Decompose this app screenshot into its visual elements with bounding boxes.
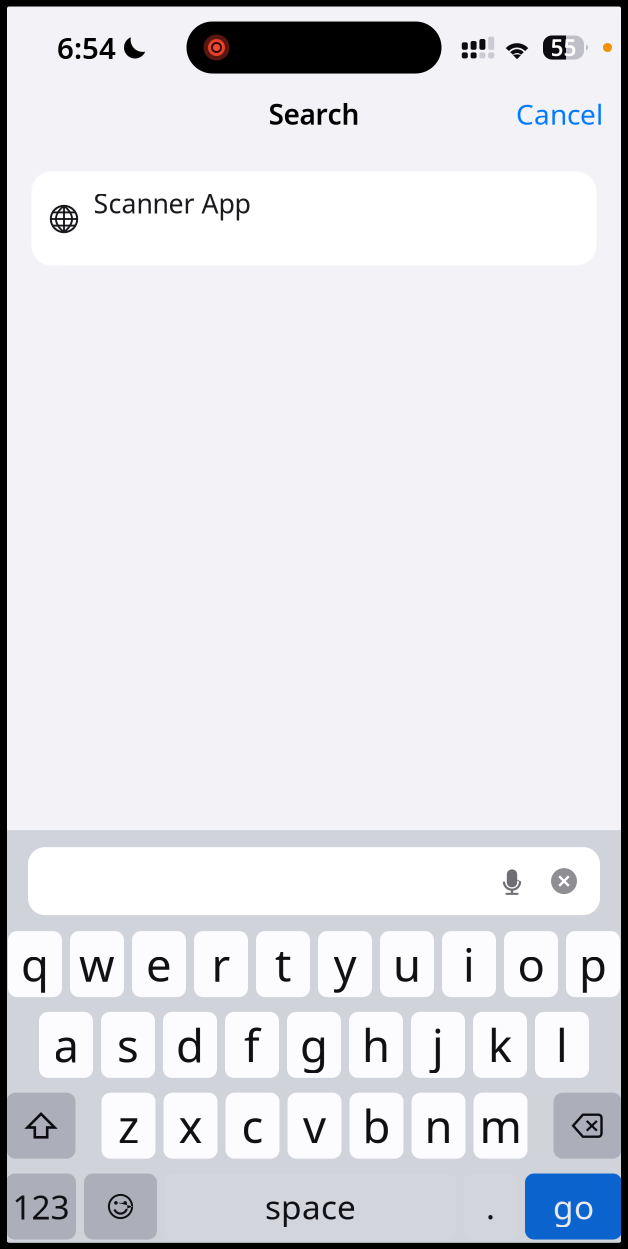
button[interactable]: 123 bbox=[6, 1173, 76, 1239]
button[interactable]: Cancel bbox=[516, 95, 621, 133]
button[interactable]: q bbox=[8, 931, 62, 997]
staticText: Cancel bbox=[516, 95, 603, 133]
button[interactable]: space bbox=[165, 1173, 456, 1239]
staticText: i bbox=[463, 934, 475, 994]
button[interactable]: z bbox=[101, 1093, 155, 1159]
button[interactable]: Scanner App bbox=[31, 171, 596, 265]
staticText: 123 bbox=[12, 1184, 69, 1229]
staticText: r bbox=[211, 934, 230, 994]
button[interactable]: s bbox=[101, 1012, 155, 1078]
button[interactable]: Emoji bbox=[84, 1173, 157, 1239]
button[interactable]: . bbox=[464, 1173, 517, 1239]
button[interactable]: j bbox=[411, 1012, 465, 1078]
staticText: n bbox=[424, 1096, 452, 1156]
staticText: t bbox=[275, 934, 291, 994]
staticText: h bbox=[362, 1015, 390, 1075]
staticText: z bbox=[118, 1096, 139, 1156]
staticText: go bbox=[553, 1184, 594, 1229]
staticText: 6:54 bbox=[57, 28, 116, 67]
staticText: l bbox=[556, 1015, 568, 1075]
button[interactable]: a bbox=[39, 1012, 93, 1078]
button[interactable]: go bbox=[525, 1173, 622, 1239]
staticText: g bbox=[300, 1015, 328, 1075]
button[interactable]: b bbox=[349, 1093, 403, 1159]
button[interactable]: Shift bbox=[6, 1093, 75, 1159]
button[interactable]: c bbox=[225, 1093, 279, 1159]
staticText: o bbox=[517, 934, 544, 994]
button[interactable]: d bbox=[163, 1012, 217, 1078]
button[interactable]: u bbox=[380, 931, 434, 997]
staticText: q bbox=[21, 934, 49, 994]
button[interactable]: v bbox=[287, 1093, 341, 1159]
button[interactable]: f bbox=[225, 1012, 279, 1078]
button[interactable]: g bbox=[287, 1012, 341, 1078]
staticText: c bbox=[241, 1096, 263, 1156]
staticText: v bbox=[303, 1096, 326, 1156]
button[interactable]: t bbox=[256, 931, 310, 997]
button[interactable]: x bbox=[163, 1093, 217, 1159]
staticText: m bbox=[479, 1096, 521, 1156]
staticText: y bbox=[333, 934, 356, 994]
button[interactable]: k bbox=[473, 1012, 527, 1078]
staticText: space bbox=[265, 1184, 356, 1229]
button[interactable]: Delete bbox=[553, 1093, 621, 1159]
button[interactable]: o bbox=[504, 931, 558, 997]
staticText: a bbox=[53, 1015, 78, 1075]
staticText: b bbox=[362, 1096, 390, 1156]
staticText: 55 bbox=[550, 32, 576, 62]
staticText: . bbox=[486, 1184, 495, 1229]
staticText: u bbox=[393, 934, 421, 994]
staticText: e bbox=[146, 934, 172, 994]
button[interactable]: w bbox=[70, 931, 124, 997]
button[interactable]: e bbox=[132, 931, 186, 997]
staticText: Scanner App bbox=[93, 185, 250, 221]
button[interactable]: r bbox=[194, 931, 248, 997]
button[interactable]: n bbox=[411, 1093, 465, 1159]
button[interactable]: h bbox=[349, 1012, 403, 1078]
button[interactable]: i bbox=[442, 931, 496, 997]
staticText: f bbox=[244, 1015, 260, 1075]
staticText: p bbox=[579, 934, 607, 994]
button[interactable]: l bbox=[535, 1012, 589, 1078]
staticText: x bbox=[178, 1096, 202, 1156]
button[interactable]: y bbox=[318, 931, 372, 997]
staticText: j bbox=[432, 1015, 444, 1075]
staticText: s bbox=[117, 1015, 139, 1075]
staticText: w bbox=[79, 934, 115, 994]
button[interactable]: p bbox=[566, 931, 620, 997]
staticText: d bbox=[176, 1015, 204, 1075]
staticText: k bbox=[488, 1015, 512, 1075]
button[interactable]: m bbox=[473, 1093, 527, 1159]
staticText: Search bbox=[268, 95, 359, 133]
